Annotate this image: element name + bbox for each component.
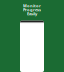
staticText: Monitor [23,3,41,8]
staticText: Easily [27,11,37,16]
staticText: Progress [23,7,41,12]
